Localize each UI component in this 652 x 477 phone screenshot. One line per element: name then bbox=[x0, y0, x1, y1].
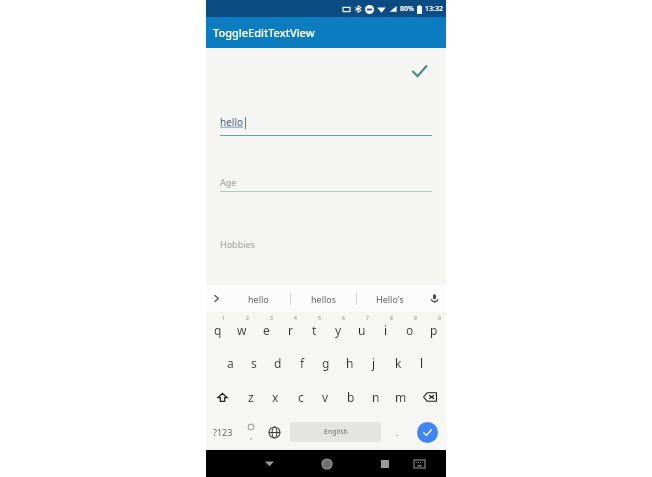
button[interactable]: h bbox=[338, 346, 362, 380]
staticText: j bbox=[372, 355, 376, 371]
button[interactable]: hello bbox=[226, 285, 290, 312]
button[interactable]: Emoji and comma bbox=[240, 414, 262, 450]
button[interactable]: 0 bbox=[422, 312, 446, 346]
button[interactable]: Voice input bbox=[422, 285, 446, 312]
button[interactable]: ToggleEditTextView bbox=[206, 17, 446, 48]
staticText: c bbox=[298, 389, 304, 405]
button[interactable]: 1 bbox=[206, 312, 230, 346]
staticText: 7 bbox=[366, 315, 369, 322]
staticText: 4 bbox=[294, 315, 297, 322]
staticText: 3 bbox=[270, 315, 273, 322]
staticText: 2 bbox=[246, 315, 249, 322]
staticText: i bbox=[384, 322, 388, 338]
button[interactable]: English bbox=[290, 422, 381, 442]
button[interactable]: d bbox=[266, 346, 290, 380]
button[interactable]: Backspace bbox=[413, 380, 446, 414]
staticText: e bbox=[263, 322, 270, 338]
button[interactable]: . bbox=[385, 414, 409, 450]
staticText: v bbox=[322, 389, 329, 405]
staticText: s bbox=[251, 355, 257, 371]
button[interactable]: 2 bbox=[230, 312, 254, 346]
button[interactable]: j bbox=[362, 346, 386, 380]
button[interactable]: ?123 bbox=[206, 414, 240, 450]
staticText: 5 bbox=[318, 315, 321, 322]
button[interactable]: 9 bbox=[398, 312, 422, 346]
staticText: x bbox=[272, 389, 279, 405]
staticText: f bbox=[300, 355, 305, 371]
button[interactable]: Shift bbox=[206, 380, 238, 414]
button[interactable]: s bbox=[242, 346, 266, 380]
button[interactable]: 3 bbox=[254, 312, 278, 346]
staticText: 1 bbox=[222, 315, 225, 322]
staticText: 80% bbox=[400, 4, 414, 14]
staticText: w bbox=[237, 322, 247, 338]
button[interactable]: z bbox=[238, 380, 263, 414]
button[interactable]: b bbox=[338, 380, 363, 414]
staticText: Age bbox=[220, 176, 237, 188]
staticText: b bbox=[347, 389, 355, 405]
staticText: d bbox=[274, 355, 282, 371]
button[interactable]: n bbox=[363, 380, 388, 414]
button[interactable]: Hello's bbox=[357, 285, 422, 312]
staticText: hello bbox=[220, 115, 244, 129]
button[interactable]: x bbox=[263, 380, 288, 414]
staticText: y bbox=[335, 322, 342, 338]
staticText: hellos bbox=[311, 293, 337, 305]
staticText: k bbox=[395, 355, 402, 371]
staticText: m bbox=[395, 389, 407, 405]
staticText: Hello's bbox=[376, 293, 404, 305]
staticText: 13:32 bbox=[425, 4, 443, 14]
button[interactable]: k bbox=[386, 346, 410, 380]
staticText: q bbox=[214, 322, 222, 338]
button[interactable]: v bbox=[313, 380, 338, 414]
button[interactable]: g bbox=[314, 346, 338, 380]
button[interactable]: Hobbies bbox=[220, 238, 432, 254]
staticText: t bbox=[312, 322, 317, 338]
button[interactable]: Recent apps bbox=[368, 450, 402, 477]
staticText: r bbox=[288, 322, 293, 338]
staticText: g bbox=[322, 355, 330, 371]
button[interactable]: a bbox=[218, 346, 242, 380]
staticText: 9 bbox=[414, 315, 417, 322]
button[interactable]: f bbox=[290, 346, 314, 380]
button[interactable]: Confirm bbox=[405, 57, 433, 85]
staticText: p bbox=[430, 322, 438, 338]
button[interactable]: hellos bbox=[291, 285, 356, 312]
button[interactable]: c bbox=[288, 380, 313, 414]
button[interactable]: hello bbox=[220, 115, 432, 137]
staticText: English bbox=[324, 427, 348, 437]
button[interactable]: l bbox=[410, 346, 434, 380]
staticText: hello bbox=[248, 293, 269, 305]
button[interactable]: Expand suggestions bbox=[206, 285, 226, 312]
button[interactable]: Age bbox=[220, 176, 432, 192]
staticText: a bbox=[227, 355, 234, 371]
staticText: l bbox=[420, 355, 424, 371]
staticText: u bbox=[358, 322, 366, 338]
button[interactable]: Hide keyboard bbox=[252, 450, 286, 477]
button[interactable]: Enter bbox=[409, 414, 446, 450]
staticText: 8 bbox=[390, 315, 393, 322]
staticText: . bbox=[396, 426, 399, 438]
staticText: ?123 bbox=[213, 426, 233, 438]
button[interactable]: 7 bbox=[350, 312, 374, 346]
button[interactable]: 5 bbox=[302, 312, 326, 346]
button[interactable]: 6 bbox=[326, 312, 350, 346]
staticText: o bbox=[406, 322, 414, 338]
button[interactable]: Home bbox=[310, 450, 344, 477]
button[interactable]: 8 bbox=[374, 312, 398, 346]
button[interactable]: m bbox=[388, 380, 413, 414]
staticText: h bbox=[346, 355, 354, 371]
staticText: n bbox=[372, 389, 380, 405]
staticText: , bbox=[250, 430, 253, 441]
staticText: Hobbies bbox=[220, 238, 255, 250]
staticText: 6 bbox=[342, 315, 345, 322]
staticText: 0 bbox=[438, 315, 441, 322]
staticText: z bbox=[248, 389, 254, 405]
button[interactable]: 4 bbox=[278, 312, 302, 346]
button[interactable]: Change language bbox=[262, 414, 286, 450]
staticText: ToggleEditTextView bbox=[213, 25, 315, 40]
button[interactable]: Switch keyboard bbox=[402, 450, 436, 477]
